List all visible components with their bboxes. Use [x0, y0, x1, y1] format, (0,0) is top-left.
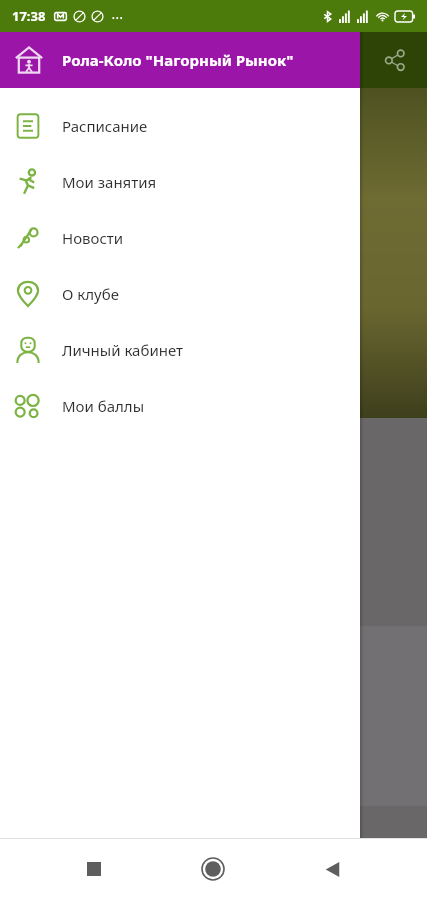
button[interactable]: Home [189, 845, 237, 893]
staticText: Рола-Коло "Нагорный Рынок" [62, 50, 294, 70]
button[interactable]: О клубе [0, 266, 360, 322]
staticText: 17:38 [12, 7, 46, 25]
button[interactable]: Recents [70, 845, 118, 893]
staticText: Мои баллы [62, 396, 145, 416]
staticText: О клубе [62, 284, 119, 304]
button[interactable]: Новости [0, 210, 360, 266]
button[interactable]: Back [308, 845, 356, 893]
staticText: Новости [62, 228, 124, 248]
button[interactable]: Расписание [0, 98, 360, 154]
staticText: Личный кабинет [62, 340, 184, 360]
staticText: Расписание [62, 116, 148, 136]
button[interactable]: Личный кабинет [0, 322, 360, 378]
button[interactable]: Мои баллы [0, 378, 360, 434]
button[interactable]: Рола-Коло "Нагорный Рынок" [0, 32, 360, 88]
staticText: Мои занятия [62, 172, 157, 192]
button[interactable]: Share [377, 42, 413, 78]
button[interactable]: Мои занятия [0, 154, 360, 210]
